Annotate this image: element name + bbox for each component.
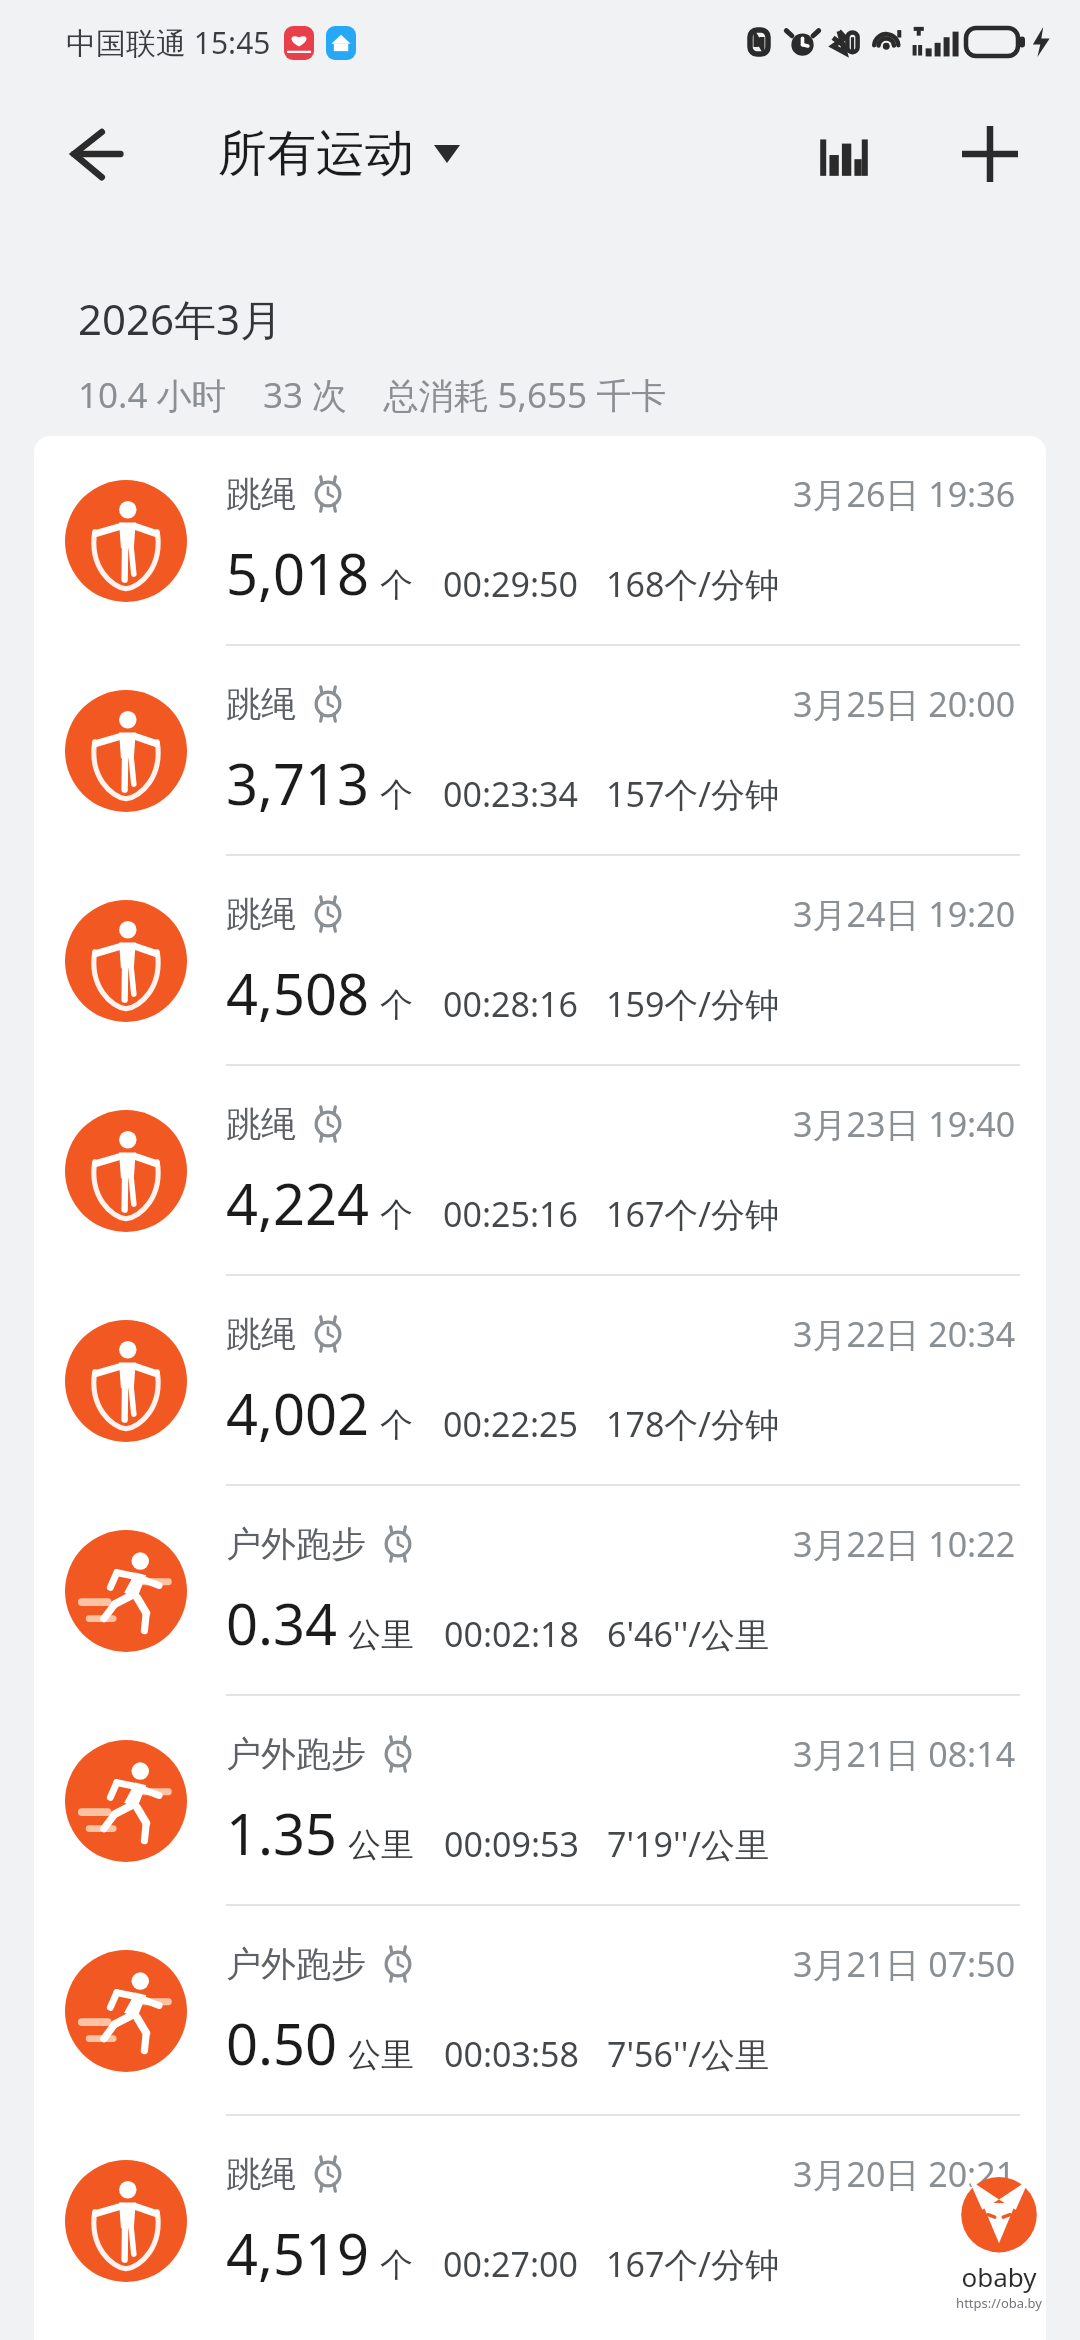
staticText: 00:02:18 [444, 1611, 579, 1657]
staticText: 3月26日 19:36 [793, 471, 1016, 517]
staticText: 跳绳 [226, 892, 296, 936]
button[interactable]: 户外跑步 [34, 1906, 1046, 2116]
staticText: 中国联通 15:45 [66, 22, 271, 63]
staticText: 168个/分钟 [606, 561, 779, 607]
staticText: 0.50 [226, 2005, 338, 2081]
staticText: 户外跑步 [226, 1942, 366, 1986]
staticText: obaby [961, 2259, 1037, 2294]
staticText: 公里 [348, 2034, 414, 2076]
staticText: 00:23:34 [443, 771, 578, 817]
staticText: 公里 [348, 1824, 414, 1866]
staticText: 10.4 小时 33 次 总消耗 5,655 千卡 [78, 371, 667, 419]
button[interactable]: 跳绳 [34, 856, 1046, 1066]
staticText: 公里 [348, 1614, 414, 1656]
button[interactable]: 跳绳 [34, 436, 1046, 646]
staticText: 跳绳 [226, 2152, 296, 2196]
staticText: 跳绳 [226, 682, 296, 726]
staticText: 3月22日 20:34 [793, 1311, 1016, 1357]
staticText: 跳绳 [226, 472, 296, 516]
staticText: 00:28:16 [443, 981, 578, 1027]
button[interactable]: Add [942, 106, 1038, 202]
staticText: 00:03:58 [444, 2031, 579, 2077]
button[interactable]: 跳绳 [34, 1276, 1046, 1486]
button[interactable]: 跳绳 [34, 646, 1046, 856]
button[interactable]: 所有运动 [218, 123, 460, 185]
staticText: 1.35 [226, 1795, 338, 1871]
button[interactable]: Back [48, 106, 144, 202]
staticText: 3月23日 19:40 [793, 1101, 1016, 1147]
staticText: 00:22:25 [443, 1401, 578, 1447]
staticText: 个 [380, 2244, 413, 2286]
staticText: 7'19''/公里 [607, 1821, 769, 1867]
staticText: 4,224 [226, 1165, 370, 1241]
staticText: 4,508 [226, 955, 370, 1031]
staticText: 6'46''/公里 [607, 1611, 769, 1657]
staticText: https://oba.by [956, 2294, 1042, 2312]
staticText: 跳绳 [226, 1102, 296, 1146]
staticText: 3月21日 07:50 [793, 1941, 1016, 1987]
button[interactable]: 户外跑步 [34, 1696, 1046, 1906]
button[interactable]: 户外跑步 [34, 1486, 1046, 1696]
staticText: 00:09:53 [444, 1821, 579, 1867]
staticText: 3月22日 10:22 [793, 1521, 1016, 1567]
staticText: 个 [380, 1194, 413, 1236]
staticText: 4,002 [226, 1375, 370, 1451]
staticText: 00:25:16 [443, 1191, 578, 1237]
staticText: 3月21日 08:14 [793, 1731, 1016, 1777]
staticText: 178个/分钟 [606, 1401, 779, 1447]
staticText: 个 [380, 774, 413, 816]
staticText: 个 [380, 1404, 413, 1446]
staticText: 所有运动 [218, 123, 414, 185]
button[interactable]: 跳绳 [34, 2116, 1046, 2326]
staticText: 159个/分钟 [606, 981, 779, 1027]
staticText: 个 [380, 984, 413, 1026]
staticText: 3月25日 20:00 [793, 681, 1016, 727]
staticText: 5,018 [226, 535, 370, 611]
staticText: 4,519 [226, 2215, 370, 2291]
staticText: 00:29:50 [443, 561, 578, 607]
staticText: 个 [380, 564, 413, 606]
staticText: 157个/分钟 [606, 771, 779, 817]
staticText: 3,713 [226, 745, 370, 821]
button[interactable]: Statistics [796, 106, 892, 202]
staticText: 00:27:00 [443, 2241, 578, 2287]
staticText: 户外跑步 [226, 1522, 366, 1566]
staticText: 3月24日 19:20 [793, 891, 1016, 937]
staticText: 167个/分钟 [606, 1191, 779, 1237]
staticText: 0.34 [226, 1585, 338, 1661]
staticText: 2026年3月 [78, 290, 283, 347]
staticText: 7'56''/公里 [607, 2031, 769, 2077]
staticText: 167个/分钟 [606, 2241, 779, 2287]
staticText: 跳绳 [226, 1312, 296, 1356]
staticText: 3月20日 20:21 [793, 2151, 1016, 2197]
staticText: 户外跑步 [226, 1732, 366, 1776]
button[interactable]: 跳绳 [34, 1066, 1046, 1276]
